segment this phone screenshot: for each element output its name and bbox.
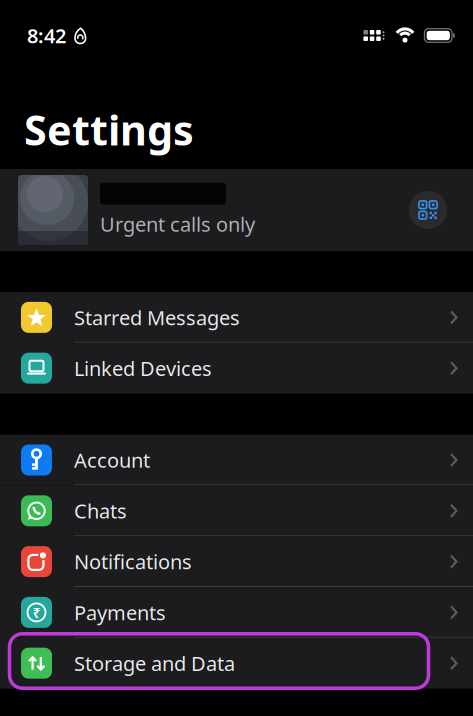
staticText: Chats xyxy=(74,497,127,524)
button[interactable]: Chats xyxy=(0,485,473,536)
staticText: 8:42 xyxy=(27,22,66,49)
staticText: Account xyxy=(74,447,150,473)
button[interactable]: Starred Messages xyxy=(0,292,473,343)
staticText: Notifications xyxy=(74,548,192,575)
button[interactable]: ₹ xyxy=(0,587,473,638)
button[interactable]: Storage and Data xyxy=(0,638,473,689)
staticText: Payments xyxy=(74,599,166,626)
staticText: Urgent calls only xyxy=(100,211,255,237)
staticText: Settings xyxy=(24,102,194,157)
staticText: ₹ xyxy=(32,603,40,622)
button[interactable]: Urgent calls only xyxy=(0,169,473,251)
button[interactable]: QR code xyxy=(409,191,447,229)
staticText: Storage and Data xyxy=(74,650,235,676)
button[interactable]: Notifications xyxy=(0,536,473,587)
button[interactable]: Account xyxy=(0,435,473,485)
button[interactable]: Linked Devices xyxy=(0,343,473,394)
staticText: Starred Messages xyxy=(74,304,240,331)
staticText: Linked Devices xyxy=(74,355,212,381)
